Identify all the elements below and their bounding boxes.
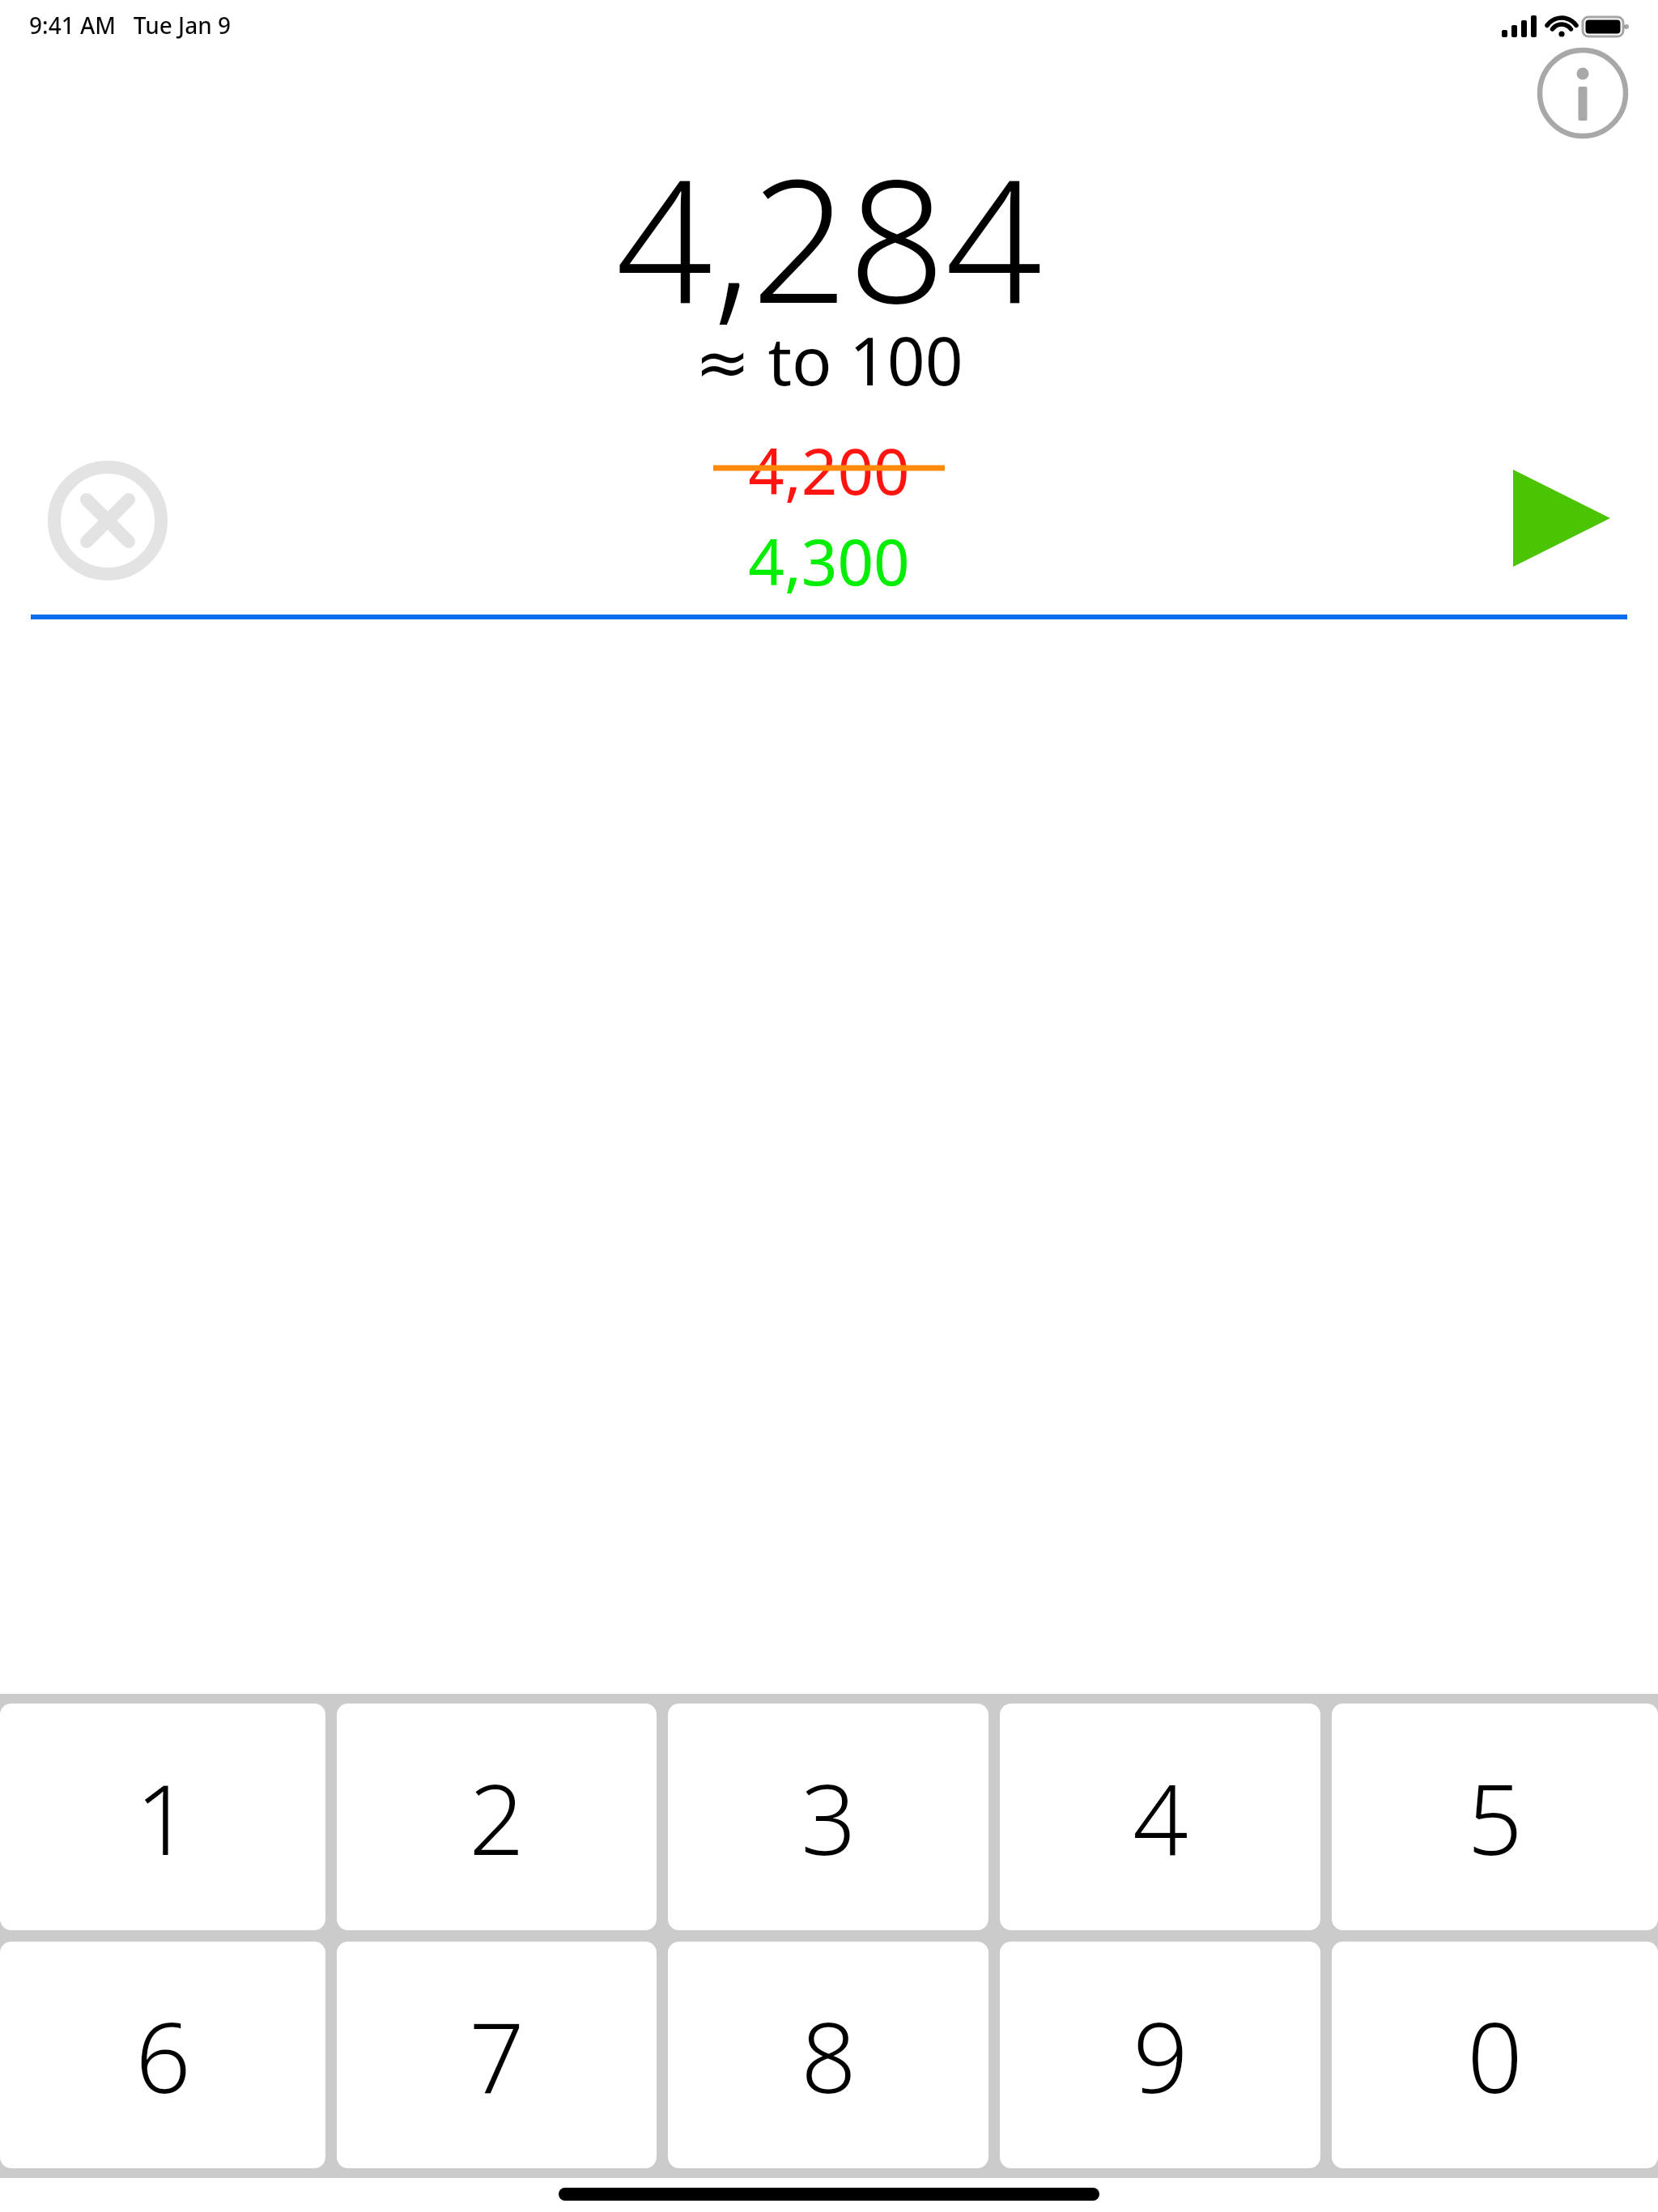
staticText: 8 bbox=[801, 1989, 857, 2121]
staticText: 4,200 bbox=[0, 428, 1658, 513]
staticText: 1 bbox=[135, 1751, 191, 1883]
staticText: 0 bbox=[1467, 1989, 1523, 2121]
button[interactable]: 7 bbox=[337, 1942, 657, 2168]
staticText: 9:41 AM Tue Jan 9 bbox=[29, 10, 232, 40]
staticText: 9 bbox=[1133, 1989, 1188, 2121]
staticText: ≈ to 100 bbox=[0, 314, 1658, 405]
button[interactable]: 5 bbox=[1332, 1704, 1658, 1930]
button[interactable]: 6 bbox=[0, 1942, 325, 2168]
staticText: 7 bbox=[469, 1989, 525, 2121]
button[interactable]: 2 bbox=[337, 1704, 657, 1930]
button[interactable]: Information bbox=[1535, 45, 1630, 141]
staticText: 2 bbox=[469, 1751, 525, 1883]
button[interactable]: Clear bbox=[47, 460, 168, 581]
button[interactable]: 1 bbox=[0, 1704, 325, 1930]
staticText: 6 bbox=[135, 1989, 191, 2121]
staticText: 4 bbox=[1133, 1751, 1188, 1883]
button[interactable]: 4 bbox=[1000, 1704, 1320, 1930]
staticText: 3 bbox=[801, 1751, 857, 1883]
button[interactable]: 9 bbox=[1000, 1942, 1320, 2168]
button[interactable]: Play bbox=[1494, 455, 1623, 585]
staticText: 5 bbox=[1467, 1751, 1523, 1883]
staticText: 4,284 bbox=[0, 121, 1658, 353]
button[interactable]: 0 bbox=[1332, 1942, 1658, 2168]
button[interactable]: 3 bbox=[668, 1704, 988, 1930]
button[interactable]: 8 bbox=[668, 1942, 988, 2168]
staticText: 4,300 bbox=[0, 518, 1658, 604]
